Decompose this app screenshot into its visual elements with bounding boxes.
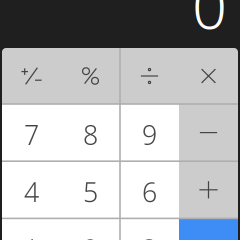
button[interactable]: Multiply	[179, 48, 238, 104]
button[interactable]: 2	[61, 218, 120, 240]
staticText: 6	[142, 174, 157, 209]
staticText: 0	[192, 0, 227, 46]
button[interactable]: Equals	[179, 218, 238, 240]
button[interactable]: 1	[2, 218, 61, 240]
staticText: 4	[24, 174, 39, 209]
button[interactable]: Plus	[179, 161, 238, 218]
staticText: 7	[24, 117, 39, 152]
button[interactable]: 3	[120, 218, 179, 240]
staticText: 5	[83, 174, 98, 209]
staticText: 9	[142, 117, 157, 152]
button[interactable]: 8	[61, 104, 120, 161]
button[interactable]: 6	[120, 161, 179, 218]
button[interactable]: Percent	[61, 48, 120, 104]
button[interactable]: Divide	[120, 48, 179, 104]
staticText: 3	[142, 231, 157, 240]
staticText: 1	[24, 231, 39, 240]
staticText: 8	[83, 117, 98, 152]
button[interactable]: Minus	[179, 104, 238, 161]
staticText: 2	[83, 231, 98, 240]
button[interactable]: 7	[2, 104, 61, 161]
button[interactable]: 5	[61, 161, 120, 218]
button[interactable]: 9	[120, 104, 179, 161]
button[interactable]: Plus minus	[2, 48, 61, 104]
button[interactable]: 4	[2, 161, 61, 218]
